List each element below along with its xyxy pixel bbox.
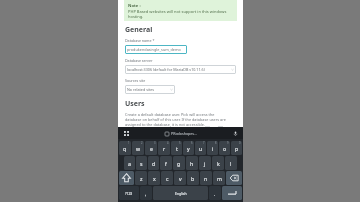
staticText: 3 [154,141,156,145]
staticText: x [153,175,156,182]
staticText: hosting. [128,14,144,19]
staticText: q [123,145,127,152]
button[interactable]: l [225,156,237,170]
staticText: f [165,160,167,167]
button[interactable]: Shift [119,171,134,185]
staticText: No related sites [127,87,155,92]
staticText: Sources site [125,78,146,83]
staticText: l [230,160,232,167]
staticText: 7 [203,141,205,145]
button[interactable]: i [207,141,218,155]
button[interactable]: s [136,156,147,170]
button[interactable]: c [161,171,173,185]
staticText: 9 [227,141,229,145]
button[interactable]: x [148,171,160,185]
staticText: 8 [215,141,217,145]
button[interactable]: z [135,171,147,185]
staticText: Note : [128,3,141,9]
button[interactable]: f [160,156,172,170]
button[interactable]: w [132,141,144,155]
button[interactable]: e [145,141,157,155]
staticText: General [125,25,153,35]
staticText: w [136,145,141,152]
staticText: s [140,160,143,167]
staticText: j [204,160,206,167]
button[interactable]: r [158,141,170,155]
button[interactable]: q [119,141,131,155]
staticText: Database server [125,58,153,63]
staticText: PHP Based websites will not support in t… [128,9,227,14]
staticText: o [223,145,227,152]
button[interactable]: PRodoshopes... [165,131,197,136]
button[interactable]: y [183,141,194,155]
staticText: , [145,190,147,197]
button[interactable]: g [173,156,185,170]
button[interactable]: produkendasingle_sum_demo [125,45,187,54]
staticText: m [217,175,222,182]
staticText: k [217,160,220,167]
staticText: r [163,145,166,152]
button[interactable]: p [231,141,242,155]
staticText: y [187,145,190,152]
staticText: d [152,160,156,167]
staticText: localhost:3306 (default for MariaDB v10.… [127,67,205,72]
button[interactable]: u [195,141,206,155]
button[interactable]: t [171,141,182,155]
staticText: p [235,145,239,152]
button[interactable]: v [174,171,186,185]
staticText: English [175,191,187,196]
button[interactable]: h [186,156,198,170]
button[interactable]: . [209,186,221,200]
button[interactable]: localhost:3306 (default for MariaDB v10.… [125,65,236,74]
staticText: i [212,145,214,152]
button[interactable]: ?123 [119,186,139,200]
staticText: z [140,175,143,182]
staticText: g [177,160,181,167]
staticText: ?123 [125,191,133,196]
button[interactable]: m [213,171,225,185]
button[interactable]: n [200,171,212,185]
staticText: u [199,145,203,152]
button[interactable]: Voice input [227,127,243,139]
button[interactable]: English [153,186,208,200]
staticText: database on behalf of this user. If the … [125,117,226,122]
staticText: n [204,175,208,182]
staticText: e [150,145,153,152]
button[interactable]: o [219,141,230,155]
staticText: 1 [128,141,130,145]
button[interactable]: Enter [222,186,242,200]
staticText: c [166,175,169,182]
staticText: produkendasingle_sum_demo [127,47,181,52]
staticText: . [214,190,216,197]
staticText: t [176,145,178,152]
button[interactable]: b [187,171,199,185]
staticText: b [191,175,195,182]
button[interactable]: d [148,156,159,170]
staticText: PRodoshopes... [171,131,197,136]
staticText: h [190,160,194,167]
staticText: Create a default database user. Pick wil… [125,112,215,117]
button[interactable]: k [212,156,224,170]
button[interactable]: , [140,186,152,200]
staticText: v [179,175,182,182]
button[interactable]: a [124,156,135,170]
staticText: 2 [141,141,143,145]
button[interactable]: Backspace [226,171,242,185]
button[interactable]: Toolbar [118,127,134,139]
staticText: Users [125,99,145,109]
staticText: a [128,160,131,167]
staticText: 5 [179,141,181,145]
button[interactable]: j [199,156,211,170]
staticText: 4 [167,141,169,145]
button[interactable]: No related sites [125,85,175,94]
staticText: assigned to the database, it is not acce… [125,122,205,127]
staticText: 6 [191,141,193,145]
staticText: Database name * [125,38,155,43]
staticText: 0 [239,141,241,145]
